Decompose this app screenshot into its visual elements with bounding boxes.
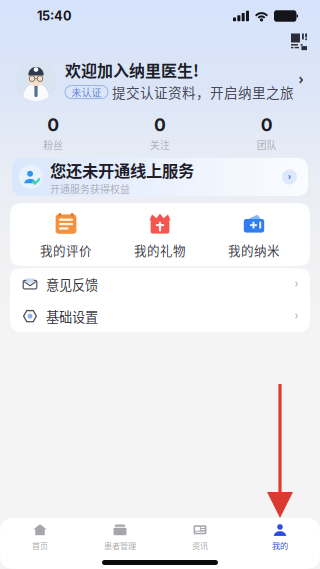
staticText: 我的礼物 [134, 241, 186, 259]
button[interactable]: 资讯 [160, 524, 240, 551]
button[interactable]: 0 [213, 114, 320, 152]
button[interactable]: 我的 [240, 524, 320, 551]
button[interactable]: 基础设置 [10, 300, 310, 332]
staticText: 15:40 [37, 8, 72, 24]
button[interactable]: 我的评价 [19, 213, 113, 259]
staticText: 欢迎加入纳里医生! [65, 58, 199, 81]
staticText: 首页 [32, 540, 48, 551]
staticText: 0 [47, 114, 59, 136]
staticText: 团队 [257, 138, 277, 152]
staticText: 粉丝 [43, 138, 63, 152]
button[interactable]: 0 [0, 114, 107, 152]
button[interactable]: 扫一扫 [288, 30, 311, 53]
staticText: 患者管理 [104, 540, 136, 551]
button[interactable]: 患者管理 [80, 524, 160, 551]
staticText: 基础设置 [46, 307, 98, 326]
button[interactable]: 我的礼物 [113, 213, 207, 259]
staticText: 开通服务获得权益 [50, 182, 130, 196]
staticText: 关注 [150, 138, 170, 152]
staticText: 未认证 [71, 85, 101, 99]
staticText: 我的评价 [40, 241, 92, 259]
button[interactable]: 欢迎加入纳里医生! [0, 52, 320, 108]
staticText: 我的 [272, 540, 288, 551]
staticText: 您还未开通线上服务 [50, 158, 194, 182]
button[interactable]: 0 [107, 114, 213, 152]
staticText: 意见反馈 [46, 275, 98, 294]
button[interactable]: 意见反馈 [10, 268, 310, 300]
staticText: 资讯 [192, 540, 208, 551]
staticText: 0 [154, 114, 166, 136]
staticText: 0 [261, 114, 273, 136]
staticText: 我的纳米 [228, 241, 280, 259]
button[interactable]: 我的纳米 [207, 213, 301, 259]
button[interactable]: 首页 [0, 524, 80, 551]
button[interactable]: 您还未开通线上服务 [12, 158, 308, 196]
staticText: 提交认证资料，开启纳里之旅 [112, 82, 294, 102]
